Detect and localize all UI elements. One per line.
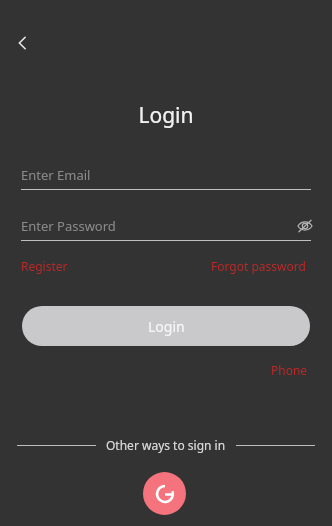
staticText: Login [0,101,332,130]
button[interactable]: Enter Email [21,160,311,190]
button[interactable]: Register [21,255,68,277]
staticText: Forgot password [211,258,306,274]
staticText: Login [148,317,185,336]
button[interactable]: Phone [271,359,308,381]
button[interactable]: Login [22,306,310,346]
button[interactable]: Sign in with Google [143,472,186,515]
staticText: Other ways to sign in [106,437,226,453]
staticText: Enter Email [21,166,91,184]
button[interactable]: Show password [291,212,319,240]
button[interactable]: Enter Password [21,211,311,241]
button[interactable]: Forgot password [211,255,306,277]
staticText: Enter Password [21,217,116,235]
staticText: Register [21,258,68,274]
staticText: Phone [271,362,308,378]
button[interactable]: Back [6,26,40,60]
